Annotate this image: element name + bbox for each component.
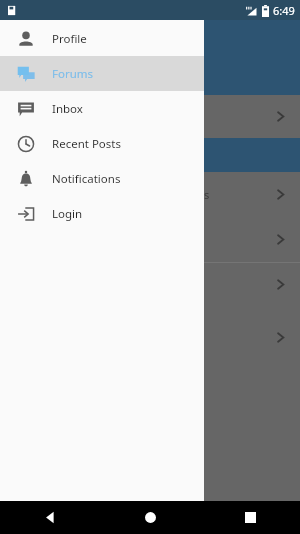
staticText: Profile <box>52 31 87 47</box>
button[interactable]: Recent Posts <box>0 126 204 161</box>
staticText: Login <box>52 206 83 222</box>
button[interactable]: Home <box>100 501 200 534</box>
button[interactable]: Login <box>0 196 204 231</box>
button[interactable]: Inbox <box>0 91 204 126</box>
staticText: Inbox <box>52 101 83 117</box>
staticText: Forums <box>52 66 94 82</box>
button[interactable]: Recent apps <box>200 501 300 534</box>
button[interactable]: Notifications <box>0 161 204 196</box>
staticText: 6:49 <box>273 3 295 18</box>
staticText: Recent Posts <box>52 136 121 152</box>
staticText: Notifications <box>52 171 121 187</box>
button[interactable]: Back <box>0 501 100 534</box>
button[interactable]: Profile <box>0 21 204 56</box>
staticText: s <box>204 187 210 202</box>
button[interactable]: Forums <box>0 56 204 91</box>
